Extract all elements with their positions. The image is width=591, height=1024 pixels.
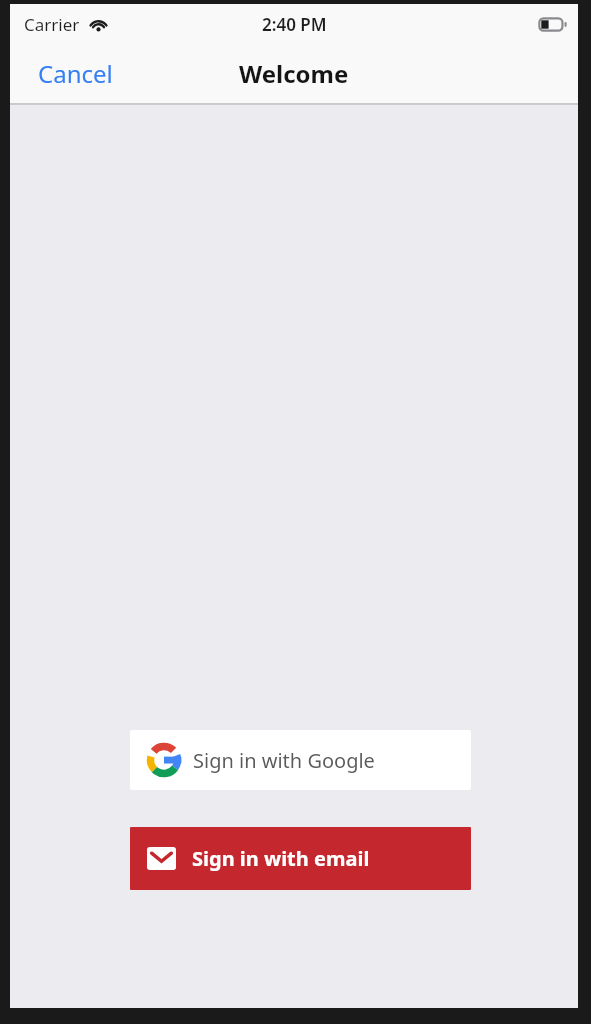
button[interactable]: Sign in with Google (130, 730, 471, 790)
staticText: Sign in with email (192, 845, 370, 872)
staticText: Cancel (38, 57, 113, 90)
staticText: Carrier (24, 13, 80, 36)
button[interactable]: Cancel (10, 49, 129, 98)
button[interactable]: Sign in with email (130, 827, 471, 890)
staticText: 2:40 PM (262, 13, 327, 36)
staticText: Sign in with Google (193, 747, 375, 774)
staticText: Welcome (239, 57, 349, 90)
